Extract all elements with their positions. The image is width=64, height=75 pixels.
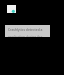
staticText: application during the last release buil… xyxy=(8,34,48,37)
button[interactable]: Crashlytics detected a new issue in your xyxy=(5,25,50,37)
button[interactable] xyxy=(7,5,16,13)
staticText: Crashlytics detected a new issue in your xyxy=(8,27,48,31)
